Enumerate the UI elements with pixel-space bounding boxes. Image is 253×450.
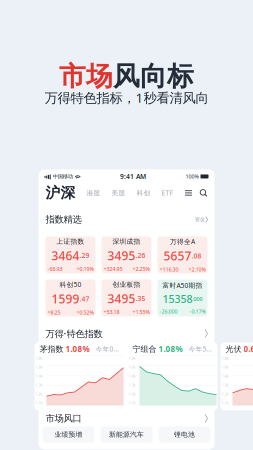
staticText: +0.52% <box>76 309 93 316</box>
staticText: +8.25 <box>47 309 60 316</box>
button[interactable]: 资金 <box>195 216 207 223</box>
staticText: 1.4k <box>35 373 42 379</box>
staticText: 光伏 <box>225 344 241 354</box>
staticText: 9:41 AM <box>120 172 146 181</box>
button[interactable]: 美股 <box>111 189 125 197</box>
staticText: 新能源汽车 <box>109 430 144 439</box>
staticText: +2.10% <box>188 266 205 273</box>
button[interactable]: 业绩预增 <box>42 426 94 442</box>
staticText: -66.93 <box>47 265 62 273</box>
staticText: 今年54.9% <box>188 344 212 353</box>
staticText: 宁组合 <box>132 344 156 354</box>
button[interactable]: 创业板指 <box>101 279 151 316</box>
button[interactable]: 上证指数 <box>45 236 95 273</box>
staticText: 港股 <box>86 189 100 197</box>
staticText: 沪深 <box>45 184 75 202</box>
button[interactable]: Search <box>199 189 207 197</box>
staticText: 万得特色指标，1秒看清风向 <box>44 89 208 106</box>
staticText: 科创50 <box>59 280 81 289</box>
staticText: 茅指数 <box>39 344 63 354</box>
staticText: .08 <box>191 251 201 260</box>
staticText: 1.08% <box>158 344 182 354</box>
button[interactable]: 富时A50期指 <box>157 279 207 316</box>
staticText: 3495 <box>107 247 135 263</box>
staticText: 1.1k <box>221 400 228 405</box>
staticText: 科创 <box>136 189 150 197</box>
button[interactable]: 港股 <box>86 189 100 197</box>
staticText: +116.30 <box>159 266 178 273</box>
staticText: 风向标 <box>113 60 194 93</box>
button[interactable]: 光伏 <box>220 342 253 410</box>
staticText: 1.3k <box>221 382 228 388</box>
staticText: +1.55% <box>132 308 149 316</box>
staticText: 1.4k <box>128 373 135 379</box>
staticText: 今年0.89% <box>95 344 119 353</box>
button[interactable]: 科创 <box>136 189 150 197</box>
staticText: 1.6k <box>221 364 228 370</box>
staticText: .000 <box>192 295 202 302</box>
staticText: 中国移动 <box>53 173 73 180</box>
staticText: 1.2k <box>35 391 42 396</box>
staticText: 1.2k <box>128 391 135 396</box>
button[interactable]: 沪深 <box>45 184 75 202</box>
staticText: 1.1k <box>128 400 135 405</box>
staticText: 锂电池 <box>174 430 195 439</box>
staticText: 100% <box>185 173 198 180</box>
button[interactable]: 新能源汽车 <box>100 426 152 442</box>
staticText: 0.62% <box>243 344 253 354</box>
staticText: 1.2k <box>221 391 228 396</box>
button[interactable]: Menu <box>184 189 192 197</box>
staticText: 1.3k <box>128 382 135 388</box>
staticText: 1.8k <box>128 355 135 361</box>
staticText: 3495 <box>107 290 135 306</box>
staticText: 资金 <box>195 216 205 223</box>
staticText: 3464 <box>51 247 79 263</box>
staticText: 业绩预增 <box>54 430 82 439</box>
staticText: 上证指数 <box>56 237 84 246</box>
staticText: +0.19% <box>76 265 93 273</box>
staticText: 万得·特色指数 <box>45 327 102 340</box>
staticText: .35 <box>135 294 145 303</box>
staticText: 指数精选 <box>45 214 81 225</box>
staticText: .29 <box>79 251 89 260</box>
staticText: 1.08% <box>65 344 89 354</box>
staticText: 深圳成指 <box>112 237 140 246</box>
staticText: 1.6k <box>128 364 135 370</box>
staticText: 创业板指 <box>112 280 140 289</box>
button[interactable]: More topics <box>205 414 207 422</box>
staticText: 市场风口 <box>45 413 81 424</box>
staticText: 15358 <box>162 292 192 306</box>
staticText: .26 <box>135 251 145 260</box>
staticText: -26.000 <box>159 308 177 315</box>
staticText: +53.18 <box>103 308 119 316</box>
staticText: -0.17% <box>189 308 205 315</box>
staticText: 市场 <box>59 60 113 93</box>
staticText: 1.8k <box>221 355 228 361</box>
staticText: 1.4k <box>221 373 228 379</box>
button[interactable]: ETF <box>161 188 172 197</box>
staticText: 5657 <box>163 248 191 264</box>
staticText: 1.3k <box>35 382 42 388</box>
staticText: 1.6k <box>35 364 42 370</box>
button[interactable]: 锂电池 <box>158 426 210 442</box>
staticText: 富时A50期指 <box>162 281 202 290</box>
staticText: +2.25% <box>132 265 149 273</box>
staticText: 1599 <box>51 291 79 307</box>
staticText: 万得全A <box>170 237 195 246</box>
staticText: +324.95 <box>103 265 122 273</box>
button[interactable]: 科创50 <box>45 279 95 316</box>
button[interactable]: 宁组合 <box>127 342 217 410</box>
staticText: .47 <box>79 294 89 303</box>
staticText: 1.8k <box>35 355 42 361</box>
button[interactable]: 茅指数 <box>34 342 124 410</box>
button[interactable]: More <box>205 329 207 337</box>
button[interactable]: 深圳成指 <box>101 236 151 273</box>
staticText: ETF <box>161 188 172 197</box>
staticText: 美股 <box>111 189 125 197</box>
staticText: 1.1k <box>35 400 42 405</box>
button[interactable]: 万得全A <box>157 236 207 273</box>
